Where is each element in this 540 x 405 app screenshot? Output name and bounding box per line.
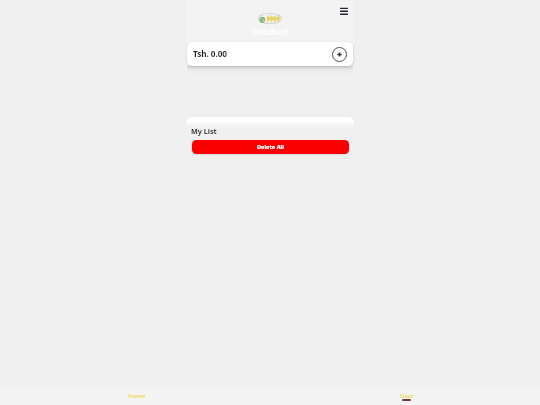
staticText: Home bbox=[128, 392, 146, 400]
button[interactable]: Delete All bbox=[192, 140, 349, 154]
staticText: User bbox=[400, 392, 414, 400]
button[interactable]: Add money bbox=[332, 47, 347, 62]
button[interactable]: Menu bbox=[335, 3, 353, 21]
staticText: Tsh. 0.00 bbox=[193, 48, 227, 59]
staticText: My List bbox=[191, 126, 217, 136]
staticText: Goodluck bbox=[252, 26, 289, 37]
button[interactable]: Tsh. 0.00 bbox=[187, 42, 353, 66]
staticText: Delete All bbox=[257, 143, 284, 151]
button[interactable]: User bbox=[270, 388, 540, 405]
button[interactable]: Home bbox=[0, 388, 270, 405]
